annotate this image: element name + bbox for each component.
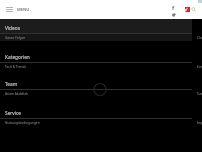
button[interactable]: Ariam Abdallah (0, 90, 192, 103)
button[interactable]: Facebook (169, 4, 178, 18)
button[interactable]: Team (0, 75, 192, 89)
staticText: Service (5, 110, 22, 117)
staticText: Tech & Trends (5, 65, 26, 69)
button[interactable]: Menu (6, 7, 30, 12)
staticText: Cha (197, 36, 202, 40)
staticText: Ganze Folgen (5, 36, 26, 40)
staticText: MENU (17, 7, 30, 12)
button[interactable]: Nutzungsbedingungen (0, 119, 192, 132)
button[interactable]: Videos (0, 19, 192, 33)
button[interactable]: Cha (197, 34, 202, 47)
staticText: Team (5, 81, 18, 88)
staticText: Euro (197, 65, 202, 69)
button[interactable]: Service (0, 104, 192, 118)
staticText: Nutzungsbedingungen (5, 121, 40, 125)
button[interactable]: Search (189, 4, 198, 15)
button[interactable]: Euro (197, 63, 202, 76)
staticText: Ariam Abdallah (5, 92, 28, 96)
button[interactable]: Tue (197, 90, 202, 103)
staticText: Imp (197, 121, 202, 125)
button[interactable]: Ganze Folgen (0, 34, 192, 47)
button[interactable]: Tech & Trends (0, 63, 192, 76)
staticText: Tue (197, 92, 202, 96)
staticText: Videos (5, 25, 20, 32)
staticText: Kategorien (5, 54, 30, 61)
button[interactable]: Kategorien (0, 48, 192, 62)
staticText: f (172, 4, 175, 11)
button[interactable]: Imp (197, 119, 202, 132)
button[interactable]: Video channel (182, 4, 191, 15)
